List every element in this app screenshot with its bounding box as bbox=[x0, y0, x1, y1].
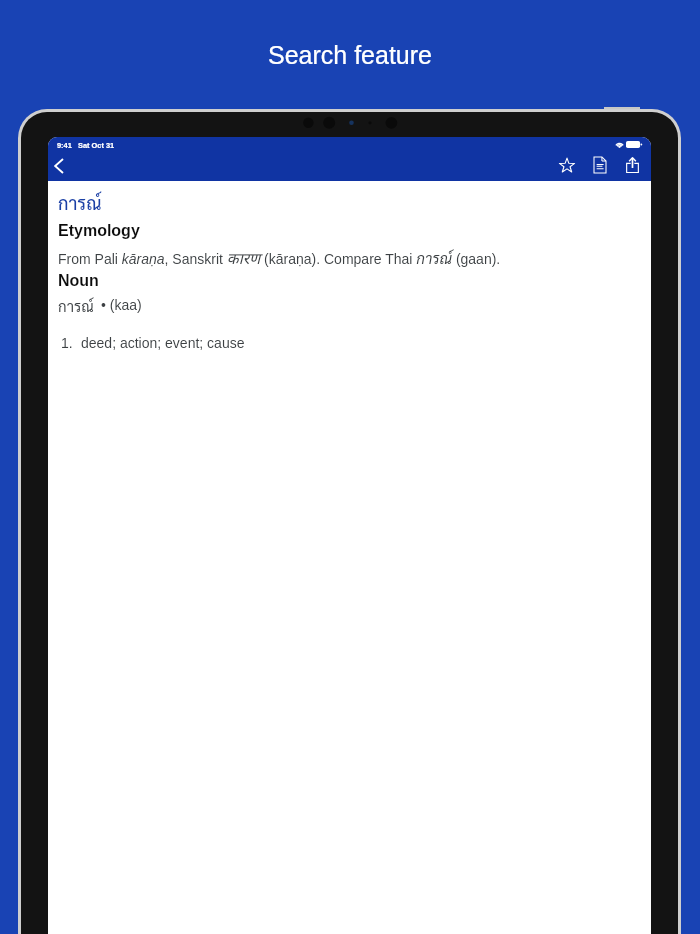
staticText: • (kaa) bbox=[101, 297, 142, 313]
staticText: From Pali kāraṇa, Sanskrit कारण (kāraṇa)… bbox=[58, 247, 501, 268]
staticText: การณ์ bbox=[58, 191, 102, 214]
staticText: 1. bbox=[61, 335, 73, 351]
staticText: Sat Oct 31 bbox=[78, 141, 115, 149]
button[interactable]: Back bbox=[48, 154, 71, 178]
staticText: deed; action; event; cause bbox=[81, 335, 245, 351]
button[interactable]: Definition bbox=[588, 153, 611, 176]
staticText: การณ์ bbox=[58, 296, 94, 315]
button[interactable]: Share bbox=[621, 153, 644, 176]
staticText: Etymology bbox=[58, 222, 140, 240]
button[interactable]: Bookmark bbox=[555, 153, 578, 176]
staticText: 9:41 bbox=[57, 141, 72, 149]
staticText: Search feature bbox=[268, 41, 432, 67]
staticText: Noun bbox=[58, 272, 99, 290]
